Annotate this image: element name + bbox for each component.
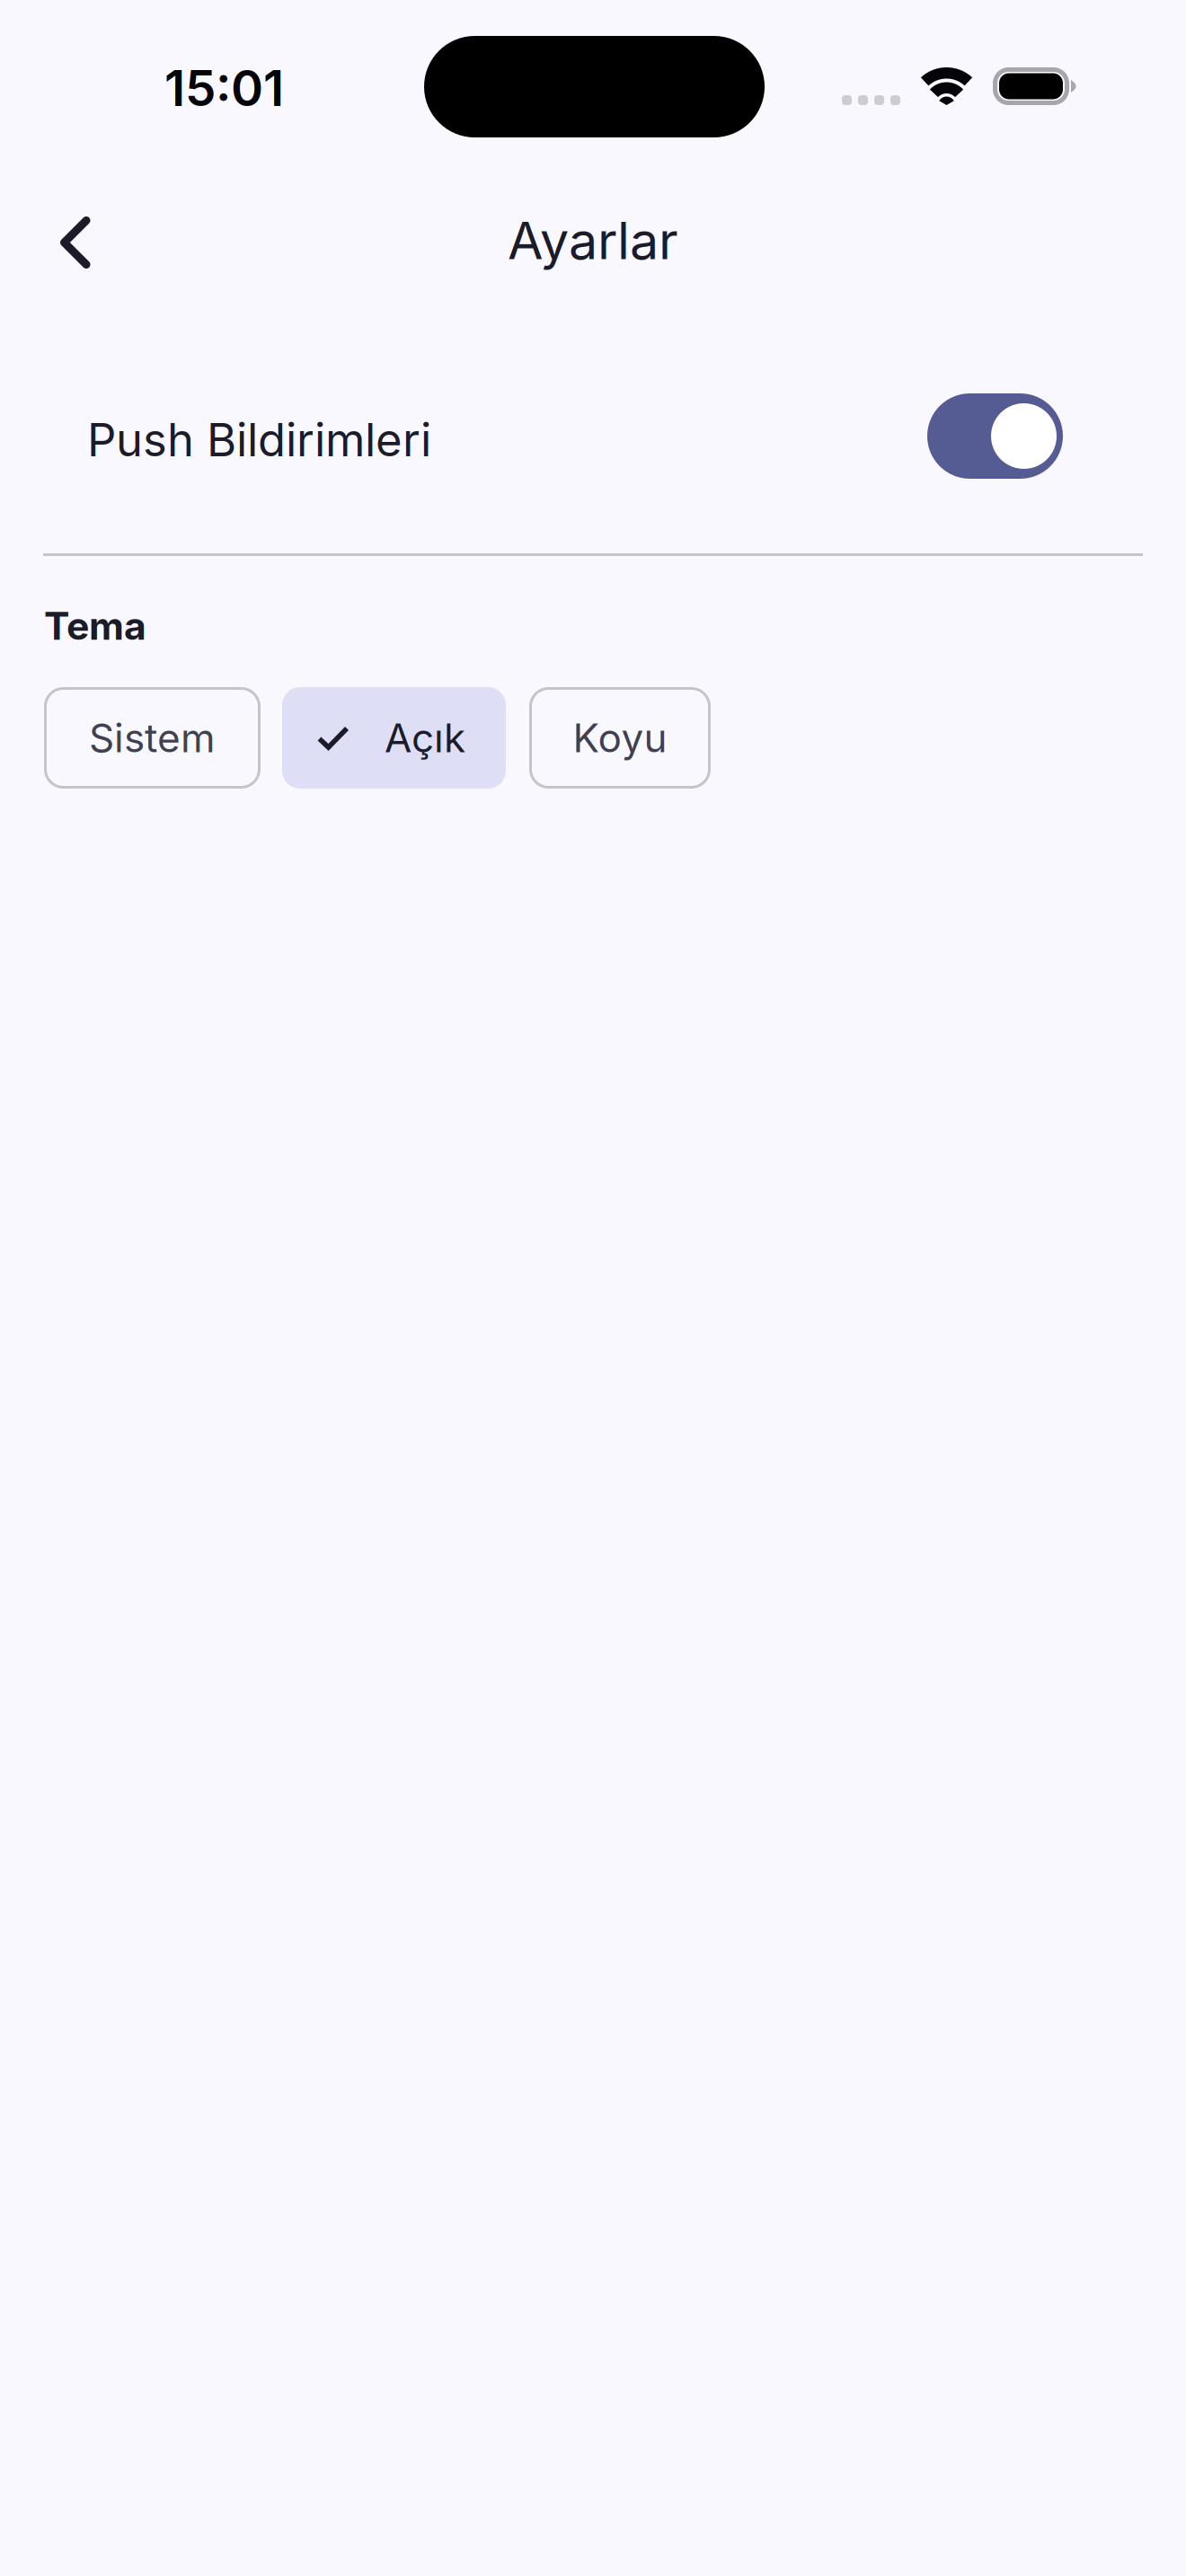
button[interactable]: Push Bildirimleri	[927, 393, 1063, 479]
staticText: Koyu	[573, 714, 667, 762]
staticText: 15:01	[164, 58, 284, 118]
button[interactable]: Açık	[282, 687, 506, 789]
staticText: Sistem	[89, 714, 216, 762]
staticText: Tema	[44, 603, 146, 649]
staticText: Push Bildirimleri	[87, 412, 431, 467]
button[interactable]: Geri	[30, 193, 120, 292]
button[interactable]: Sistem	[44, 687, 261, 789]
staticText: Açık	[385, 714, 465, 762]
button[interactable]: Koyu	[529, 687, 711, 789]
staticText: Ayarlar	[508, 209, 678, 272]
